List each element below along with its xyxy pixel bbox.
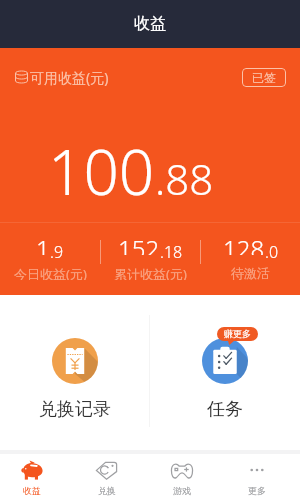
staticText: 兑换	[98, 485, 116, 496]
staticText: 赚更多	[224, 328, 251, 339]
button[interactable]: 兑换记录	[0, 295, 149, 447]
staticText: 1	[36, 232, 50, 255]
button[interactable]: 收益	[0, 454, 69, 502]
staticText: 待激活	[231, 265, 270, 280]
staticText: .9	[50, 241, 64, 263]
staticText: 今日收益(元)	[14, 265, 87, 280]
staticText: 已签	[252, 70, 276, 85]
staticText: 128	[223, 232, 265, 255]
button[interactable]: 赚更多	[150, 295, 300, 447]
button[interactable]: 已签	[242, 68, 286, 87]
staticText: 100	[48, 129, 155, 205]
staticText: 收益	[23, 485, 41, 496]
staticText: 收益	[134, 14, 166, 34]
staticText: .88	[155, 150, 214, 207]
staticText: 152	[118, 232, 160, 255]
staticText: .18	[160, 241, 183, 263]
button[interactable]: 兑换	[69, 454, 144, 502]
staticText: 游戏	[173, 485, 191, 496]
staticText: .0	[265, 241, 279, 263]
button[interactable]: 游戏	[144, 454, 219, 502]
staticText: 更多	[248, 485, 266, 496]
staticText: 可用收益(元)	[30, 68, 109, 87]
staticText: 任务	[207, 398, 243, 421]
button[interactable]: 更多	[219, 454, 294, 502]
staticText: 兑换记录	[39, 398, 111, 421]
staticText: 累计收益(元)	[114, 265, 187, 280]
